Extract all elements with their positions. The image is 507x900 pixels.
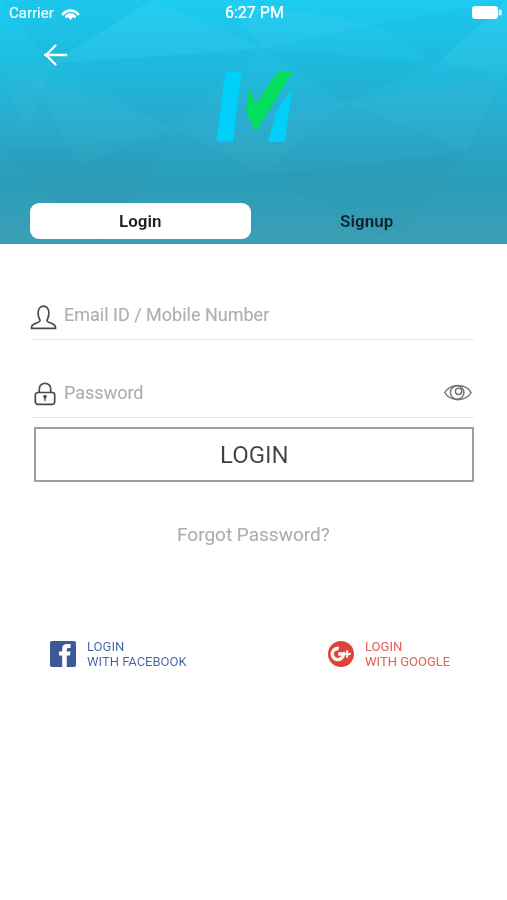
button[interactable]: Show password [440, 378, 476, 408]
button[interactable]: Forgot Password? [170, 518, 337, 550]
staticText: Signup [340, 211, 394, 231]
button[interactable]: Login [30, 203, 251, 239]
staticText: LOGIN [365, 639, 403, 654]
button[interactable]: Back [36, 37, 72, 73]
staticText: Carrier [9, 4, 54, 22]
staticText: Password [64, 382, 144, 403]
staticText: LOGIN [220, 441, 289, 469]
staticText: 6:27 PM [225, 3, 284, 22]
staticText: Email ID / Mobile Number [64, 304, 270, 325]
button[interactable]: LOGIN [50, 637, 187, 671]
staticText: Login [119, 211, 162, 231]
button[interactable]: Password [31, 374, 474, 418]
button[interactable]: LOGIN [34, 427, 474, 482]
staticText: WITH GOOGLE [365, 654, 451, 669]
button[interactable]: Email ID / Mobile Number [31, 296, 474, 340]
button[interactable]: LOGIN [328, 637, 451, 671]
staticText: Forgot Password? [177, 523, 330, 545]
staticText: LOGIN [87, 639, 125, 654]
button[interactable]: Signup [281, 203, 452, 239]
staticText: WITH FACEBOOK [87, 654, 187, 669]
